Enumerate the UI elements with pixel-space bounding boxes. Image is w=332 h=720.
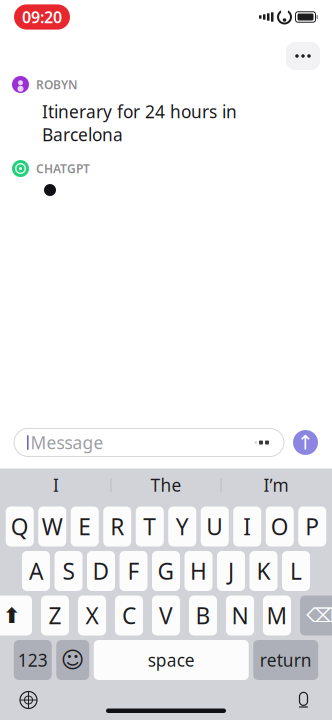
staticText: A [29,556,43,586]
button[interactable]: C [115,595,143,635]
staticText: W [42,511,63,541]
button[interactable]: M [263,595,291,635]
button[interactable]: F [119,551,147,591]
button[interactable]: Shift [0,595,32,635]
staticText: I’m [263,473,288,496]
button[interactable]: A [22,551,50,591]
staticText: K [256,556,270,586]
staticText: I [243,511,251,541]
button[interactable]: J [217,551,245,591]
button[interactable]: E [71,506,99,546]
button[interactable]: More options [286,42,320,70]
button[interactable]: S [54,551,82,591]
button[interactable]: B [189,595,217,635]
button[interactable]: I’m [221,468,330,501]
button[interactable]: return [253,640,318,680]
staticText: I [53,473,59,496]
button[interactable]: O [266,506,294,546]
staticText: X [85,600,98,630]
button[interactable]: V [152,595,180,635]
staticText: S [62,556,74,586]
staticText: F [127,556,139,586]
staticText: L [290,556,302,586]
staticText: T [143,511,156,541]
button[interactable]: N [226,595,254,635]
staticText: B [195,600,210,630]
staticText: Message [31,431,104,454]
button[interactable]: I [233,506,261,546]
staticText: CHATGPT [36,161,90,176]
staticText: N [231,600,248,630]
button[interactable]: space [94,640,249,680]
staticText: C [122,600,136,630]
button[interactable]: The [111,468,220,501]
staticText: ROBYN [36,76,78,92]
staticText: ☺ [61,647,85,673]
button[interactable]: G [152,551,180,591]
button[interactable]: Switch keyboard [13,685,43,715]
button[interactable]: I [1,468,110,501]
staticText: O [271,511,289,541]
button[interactable]: 123 [14,640,52,680]
button[interactable]: Q [6,506,34,546]
staticText: R [110,511,124,541]
staticText: ⬆ [3,603,21,628]
staticText: ↑ [297,431,314,454]
button[interactable]: Z [41,595,69,635]
staticText: Q [11,511,29,541]
staticText: D [92,556,109,586]
button[interactable]: L [282,551,310,591]
button[interactable]: H [184,551,212,591]
button[interactable]: P [298,506,326,546]
staticText: The [150,473,181,496]
button[interactable]: Send [293,430,318,455]
button[interactable]: T [136,506,164,546]
button[interactable]: D [87,551,115,591]
staticText: Z [48,600,61,630]
button[interactable]: Emoji [56,640,89,680]
staticText: return [260,648,312,671]
button[interactable]: Delete [300,595,332,635]
staticText: M [266,600,287,630]
button[interactable]: R [103,506,131,546]
button[interactable]: Message [14,428,284,456]
staticText: U [206,511,223,541]
staticText: G [157,556,174,586]
staticText: Itinerary for 24 hours in Barcelona [42,100,237,146]
staticText: space [148,648,195,671]
staticText: H [190,556,207,586]
button[interactable]: W [38,506,66,546]
staticText: ⌫ [306,604,332,627]
staticText: V [159,600,173,630]
staticText: 123 [18,648,48,671]
staticText: Y [176,511,189,541]
button[interactable]: U [201,506,229,546]
staticText: 09:20 [22,6,62,28]
button[interactable]: K [249,551,277,591]
staticText: P [305,511,319,541]
button[interactable]: X [78,595,106,635]
button[interactable]: Y [168,506,196,546]
staticText: E [78,511,91,541]
staticText: J [228,556,234,586]
button[interactable]: Dictation [288,685,318,715]
